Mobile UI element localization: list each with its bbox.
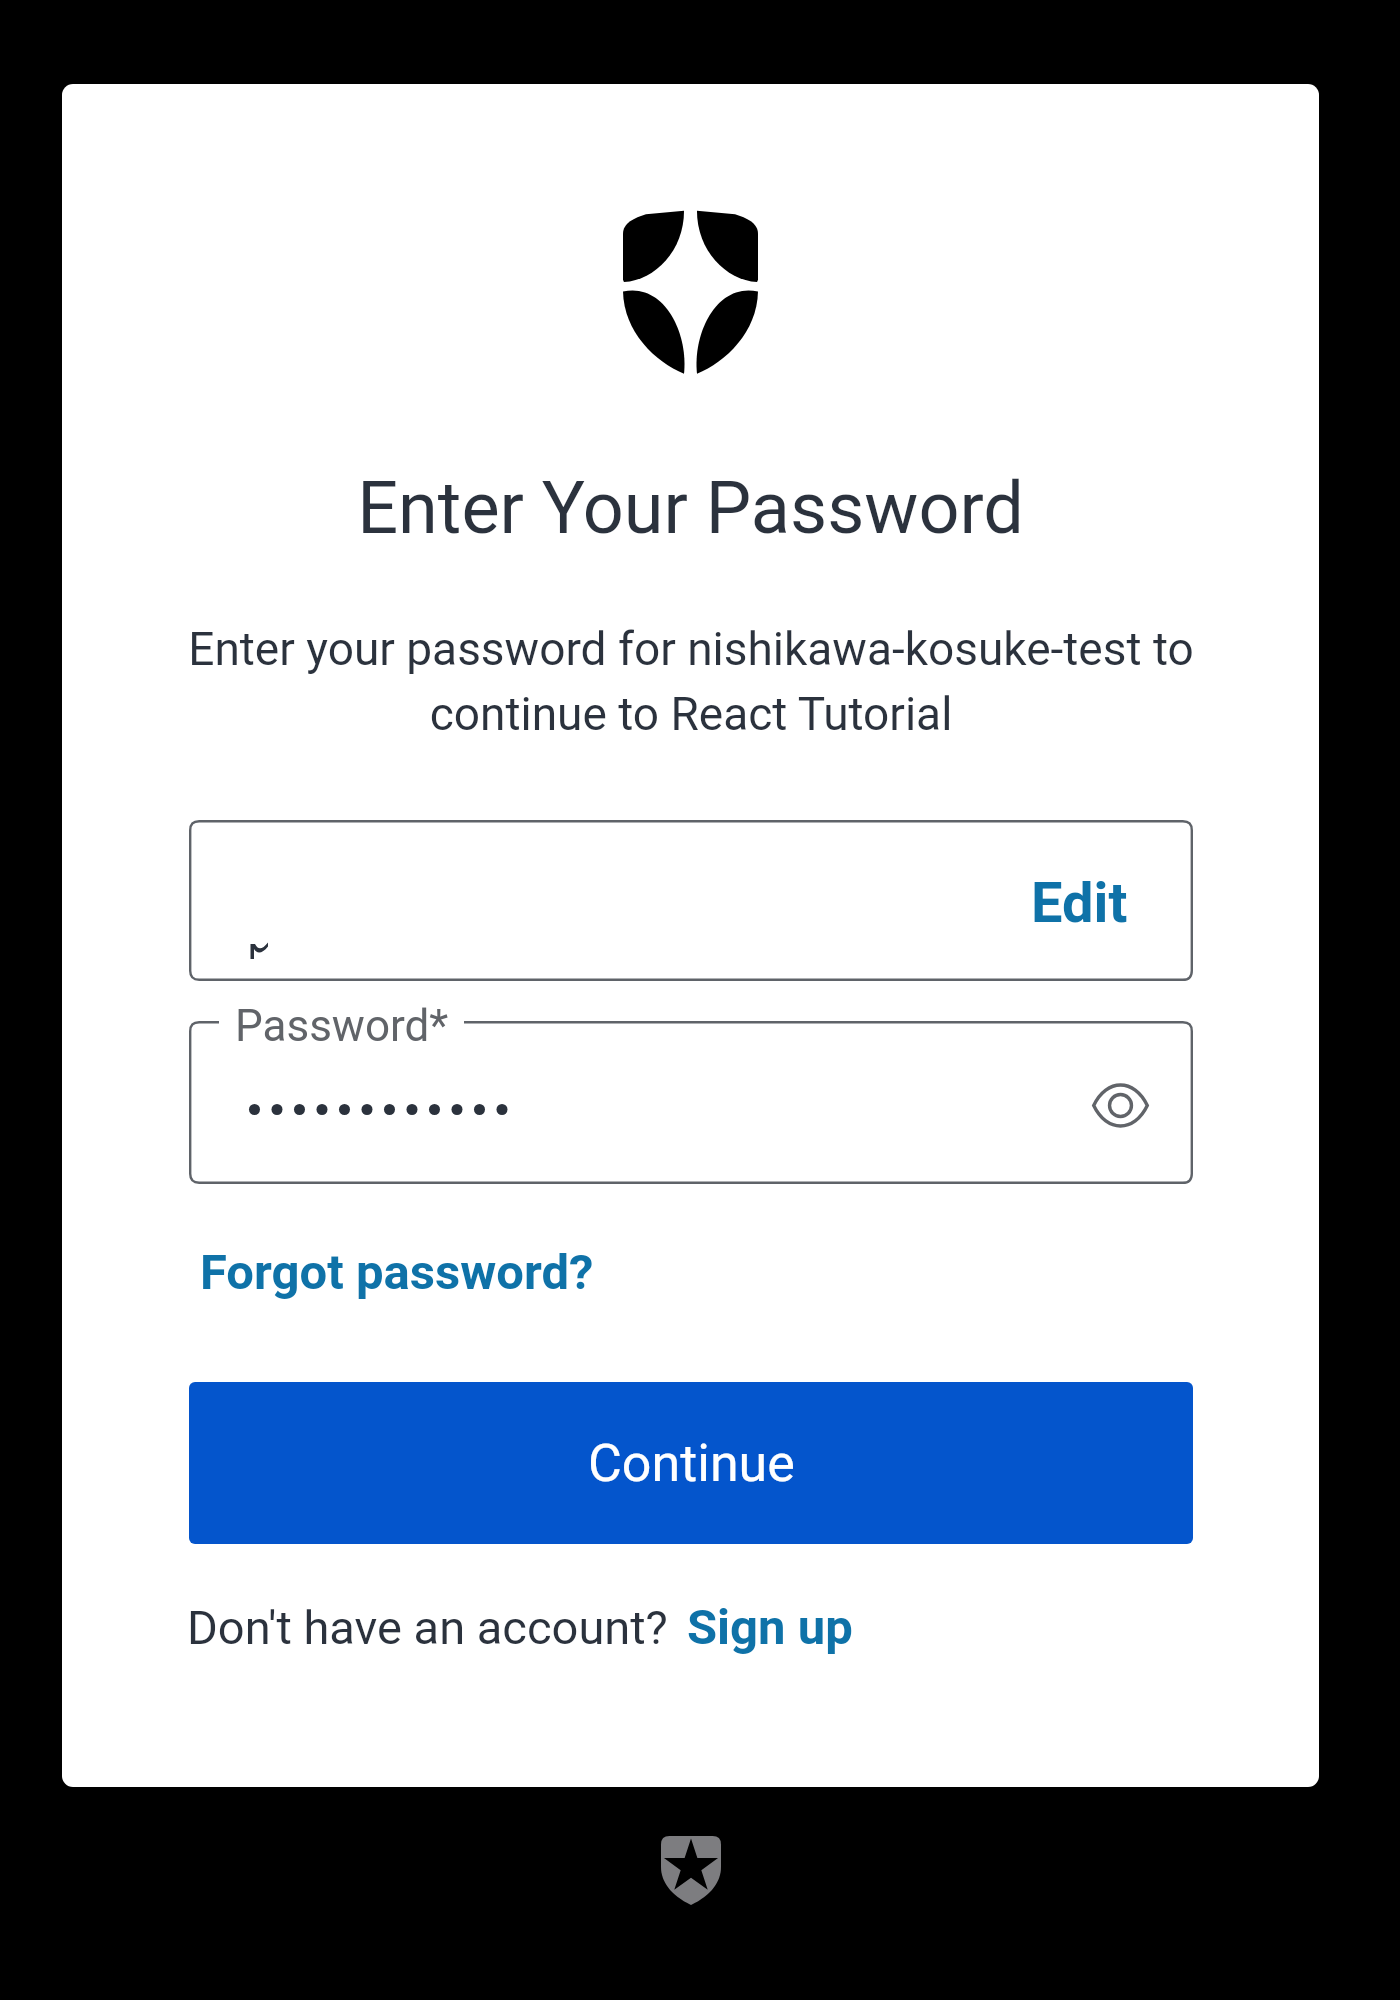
staticText: Edit bbox=[1031, 870, 1128, 936]
staticText: Don't have an account? bbox=[187, 1600, 668, 1655]
button[interactable]: Edit bbox=[189, 820, 1193, 981]
other: Auth0 bbox=[661, 1836, 721, 1905]
button[interactable]: Forgot password? bbox=[200, 1244, 594, 1301]
button[interactable]: Sign up bbox=[687, 1599, 853, 1656]
staticText: Password* bbox=[235, 1000, 449, 1052]
staticText: Enter your password for nishikawa-kosuke… bbox=[166, 622, 1216, 741]
button[interactable]: Show password bbox=[1077, 1062, 1163, 1148]
staticText: Continue bbox=[588, 1433, 795, 1494]
staticText: Enter Your Password bbox=[62, 466, 1319, 550]
button[interactable]: Continue bbox=[189, 1382, 1193, 1544]
